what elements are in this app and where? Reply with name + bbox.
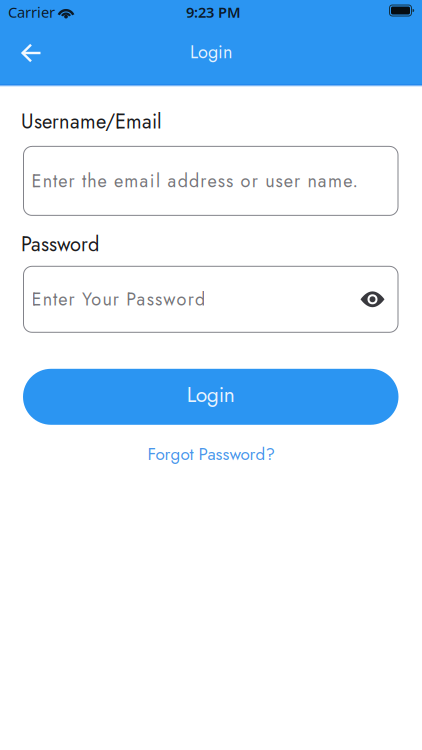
staticText: Login (190, 39, 232, 65)
staticText: Password (21, 230, 99, 259)
staticText: Login (187, 380, 235, 410)
button[interactable]: Forgot Password? (147, 442, 274, 466)
staticText: Enter the email address or user name. (31, 168, 357, 194)
staticText: Enter Your Password (31, 286, 205, 312)
button[interactable]: Show password (360, 291, 398, 307)
button[interactable]: Login (23, 369, 398, 425)
button[interactable]: Back (0, 29, 42, 78)
button[interactable]: Username/Email (23, 146, 398, 216)
staticText: 9:23 PM (186, 2, 241, 22)
button[interactable]: Password (23, 266, 398, 333)
staticText: Forgot Password? (147, 442, 274, 466)
staticText: Username/Email (21, 107, 162, 136)
staticText: Carrier (8, 2, 55, 22)
